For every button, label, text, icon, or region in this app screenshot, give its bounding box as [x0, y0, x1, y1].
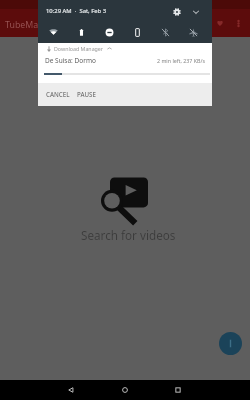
button[interactable]: Recents [169, 381, 187, 399]
button[interactable]: CANCEL [42, 87, 74, 101]
staticText: 10:29 AM · Sat, Feb 3 [46, 7, 107, 15]
staticText: TubeMate [5, 19, 47, 31]
button[interactable]: Airplane mode [185, 24, 201, 40]
button[interactable]: Wi-Fi [45, 24, 61, 40]
button[interactable]: More options [229, 14, 247, 32]
staticText: CANCEL [46, 90, 70, 98]
button[interactable]: Home [116, 381, 134, 399]
staticText: PAUSE [77, 90, 96, 98]
button[interactable]: Settings [170, 5, 184, 19]
button[interactable]: Flashlight [73, 24, 89, 40]
button[interactable]: Expand [189, 5, 203, 19]
button[interactable]: Auto rotate [129, 24, 145, 40]
staticText: 2 min left, 237 KB/s [157, 57, 205, 64]
button[interactable]: PAUSE [73, 87, 100, 101]
staticText: De Suisa: Dormo [45, 56, 96, 65]
staticText: Search for videos [81, 227, 176, 243]
button[interactable]: Back [62, 381, 80, 399]
staticText: Download Manager [54, 45, 104, 52]
button[interactable]: Bluetooth [157, 24, 173, 40]
button[interactable]: Do not disturb [101, 24, 117, 40]
button[interactable]: Favorites [211, 14, 229, 32]
button[interactable]: Download [219, 332, 242, 355]
button[interactable]: Download Manager [38, 43, 212, 83]
